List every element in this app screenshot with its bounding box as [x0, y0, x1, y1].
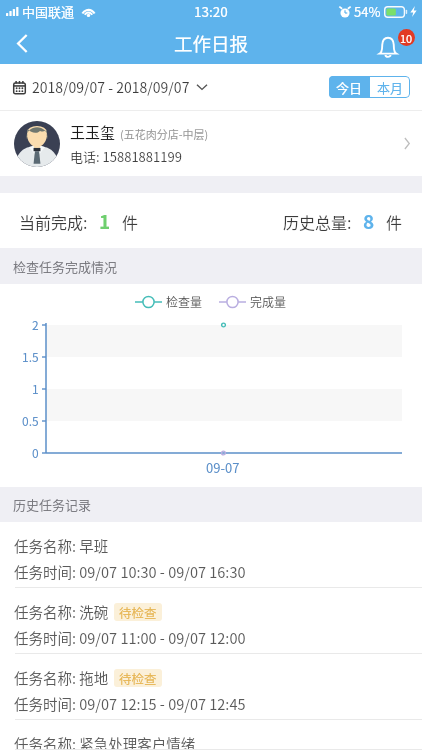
staticText: 任务名称: 早班: [14, 535, 109, 556]
staticText: 本月: [377, 78, 404, 97]
staticText: 1.5: [22, 348, 39, 365]
button[interactable]: 2018/09/07 - 2018/09/07: [13, 77, 207, 97]
staticText: 件: [386, 210, 403, 233]
staticText: 电话: 15881881199: [70, 147, 182, 166]
staticText: 10: [400, 30, 413, 46]
staticText: 任务名称: 洗碗: [14, 601, 109, 622]
staticText: 2: [32, 316, 39, 333]
staticText: 完成量: [250, 293, 287, 310]
staticText: 历史任务记录: [13, 495, 92, 514]
staticText: 待检查: [119, 603, 157, 621]
button[interactable]: 今日: [329, 76, 370, 98]
staticText: 任务名称: 紧急处理客户情绪: [14, 733, 196, 750]
staticText: 当前完成:: [19, 210, 88, 233]
staticText: 8: [363, 207, 375, 235]
staticText: 54%: [354, 2, 381, 21]
staticText: 任务时间: 09/07 10:30 - 09/07 16:30: [14, 561, 246, 582]
button[interactable]: Notifications: [372, 22, 422, 64]
button[interactable]: 任务名称: 拖地: [0, 654, 422, 720]
button[interactable]: 任务名称: 早班: [0, 522, 422, 588]
staticText: 0: [32, 444, 39, 461]
button[interactable]: 任务名称: 紧急处理客户情绪: [0, 720, 422, 750]
staticText: 检查任务完成情况: [13, 257, 118, 276]
staticText: 任务名称: 拖地: [14, 667, 109, 688]
staticText: 任务时间: 09/07 12:15 - 09/07 12:45: [14, 693, 246, 714]
staticText: 检查量: [166, 293, 203, 310]
staticText: 2018/09/07 - 2018/09/07: [32, 77, 190, 97]
staticText: 工作日报: [174, 30, 249, 57]
button[interactable]: Back: [0, 22, 44, 64]
staticText: 件: [122, 210, 139, 233]
staticText: (五花肉分店-中层): [120, 126, 209, 142]
button[interactable]: 王玉玺: [0, 111, 422, 176]
staticText: 0.5: [22, 412, 39, 429]
staticText: 13:20: [194, 1, 228, 21]
staticText: 09-07: [206, 458, 240, 477]
staticText: 今日: [336, 78, 363, 97]
staticText: 王玉玺: [70, 121, 116, 143]
button[interactable]: 任务名称: 洗碗: [0, 588, 422, 654]
staticText: 任务时间: 09/07 11:00 - 09/07 12:00: [14, 627, 246, 648]
staticText: 中国联通: [22, 2, 75, 21]
staticText: 待检查: [119, 669, 157, 687]
staticText: 历史总量:: [283, 210, 352, 233]
staticText: 1: [32, 380, 39, 397]
button[interactable]: 本月: [370, 76, 410, 98]
staticText: 1: [99, 207, 111, 235]
